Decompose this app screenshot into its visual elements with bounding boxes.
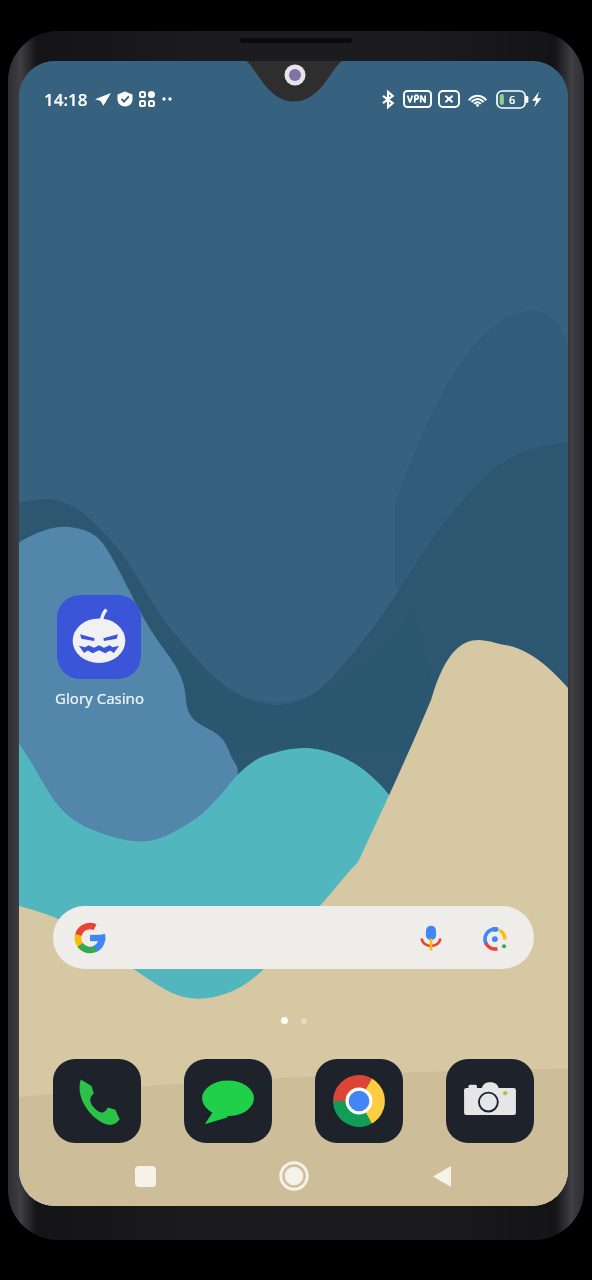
button[interactable]: Glory Casino: [38, 595, 160, 708]
button[interactable]: Search: [53, 906, 534, 969]
staticText: Glory Casino: [55, 688, 144, 708]
button[interactable]: Chrome: [315, 1059, 403, 1143]
button[interactable]: Messages: [184, 1059, 272, 1143]
staticText: 6: [509, 92, 516, 107]
button[interactable]: Back: [419, 1154, 465, 1198]
button[interactable]: Phone: [53, 1059, 141, 1143]
button[interactable]: Camera: [446, 1059, 534, 1143]
button[interactable]: Home: [271, 1154, 317, 1198]
button[interactable]: Recents: [122, 1154, 168, 1198]
staticText: 14:18: [44, 88, 88, 111]
